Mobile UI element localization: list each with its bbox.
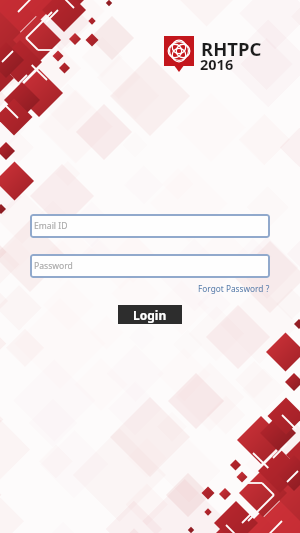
button[interactable]: Email ID xyxy=(30,214,270,238)
button[interactable]: Password xyxy=(30,254,270,278)
staticText: 2016 xyxy=(200,54,234,74)
staticText: RHTPC xyxy=(201,36,262,61)
other: RHTPC logo xyxy=(164,36,194,74)
staticText: Login xyxy=(133,307,167,323)
button[interactable]: Forgot Password ? xyxy=(198,283,270,294)
staticText: Email ID xyxy=(34,220,68,232)
staticText: Password xyxy=(34,260,73,272)
button[interactable]: Login xyxy=(118,305,182,324)
